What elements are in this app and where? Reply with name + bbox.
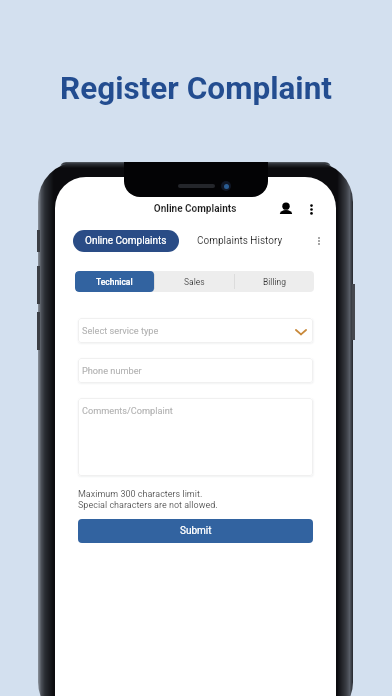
staticText: Billing (263, 277, 287, 287)
button[interactable]: Billing (235, 271, 314, 292)
staticText: Sales (184, 277, 205, 287)
button[interactable]: Complaints History (195, 230, 285, 252)
staticText: Phone number (82, 365, 142, 376)
button[interactable]: More (312, 234, 326, 248)
staticText: Register Complaint (60, 70, 332, 107)
staticText: Select service type (82, 325, 159, 336)
staticText: Online Complaints (85, 235, 167, 247)
button[interactable]: Technical (75, 271, 154, 292)
button[interactable]: Account (275, 198, 297, 220)
button[interactable]: More options (303, 201, 319, 217)
staticText: Maximum 300 characters limit. Special ch… (78, 489, 218, 511)
button[interactable]: Phone number (78, 358, 313, 383)
button[interactable]: Online Complaints (73, 230, 179, 252)
button[interactable]: Sales (155, 271, 234, 292)
staticText: Comments/Complaint (82, 405, 173, 416)
staticText: Complaints History (197, 235, 283, 247)
staticText: Technical (96, 277, 133, 287)
staticText: Online Complaints (115, 203, 275, 215)
button[interactable]: Submit (78, 519, 313, 543)
button[interactable]: Comments/Complaint (78, 398, 313, 476)
staticText: Submit (180, 525, 212, 537)
button[interactable]: Select service type (78, 318, 313, 343)
